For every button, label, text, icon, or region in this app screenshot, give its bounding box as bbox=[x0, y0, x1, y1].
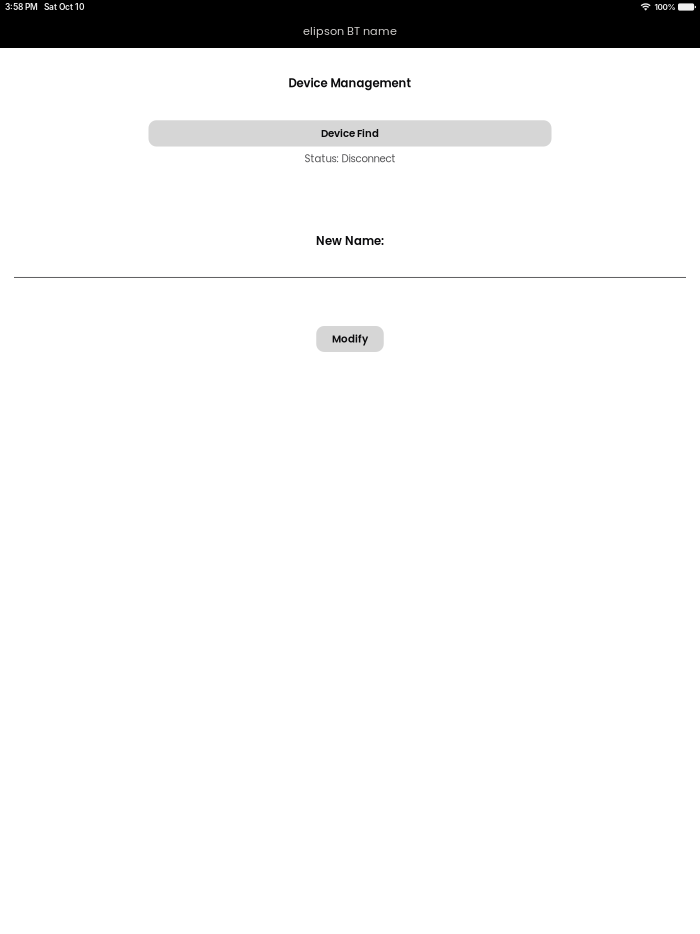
button[interactable]: Device Find bbox=[148, 120, 551, 146]
button[interactable]: Modify bbox=[316, 326, 384, 352]
staticText: 100% bbox=[654, 2, 675, 12]
staticText: Sat Oct 10 bbox=[44, 2, 85, 12]
staticText: Device Find bbox=[321, 126, 379, 140]
staticText: New Name: bbox=[316, 233, 384, 249]
staticText: Device Management bbox=[288, 75, 411, 91]
staticText: 3:58 PM bbox=[5, 2, 38, 12]
staticText: Modify bbox=[332, 332, 368, 346]
staticText: Status: Disconnect bbox=[304, 151, 395, 166]
staticText: elipson BT name bbox=[303, 23, 397, 39]
